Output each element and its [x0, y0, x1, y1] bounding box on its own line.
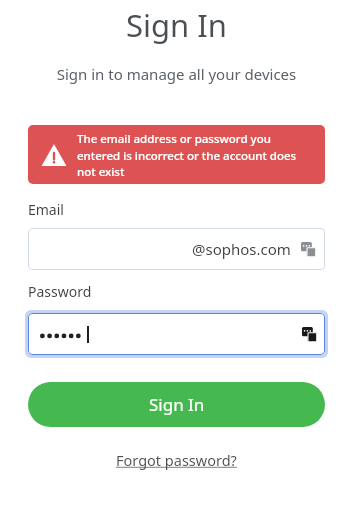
button[interactable]: Sign In [28, 382, 325, 427]
button[interactable] [28, 313, 325, 355]
staticText: Sign In [0, 4, 353, 46]
staticText: Password [28, 282, 92, 301]
staticText: Email [28, 200, 64, 219]
staticText: Sign In [149, 393, 205, 416]
staticText: The email address or password you entere… [77, 131, 317, 179]
button[interactable]: @sophos.com [28, 228, 325, 270]
staticText: Sign in to manage all your devices [0, 64, 353, 84]
staticText: @sophos.com [192, 239, 291, 259]
button[interactable]: Forgot password? [110, 448, 243, 472]
